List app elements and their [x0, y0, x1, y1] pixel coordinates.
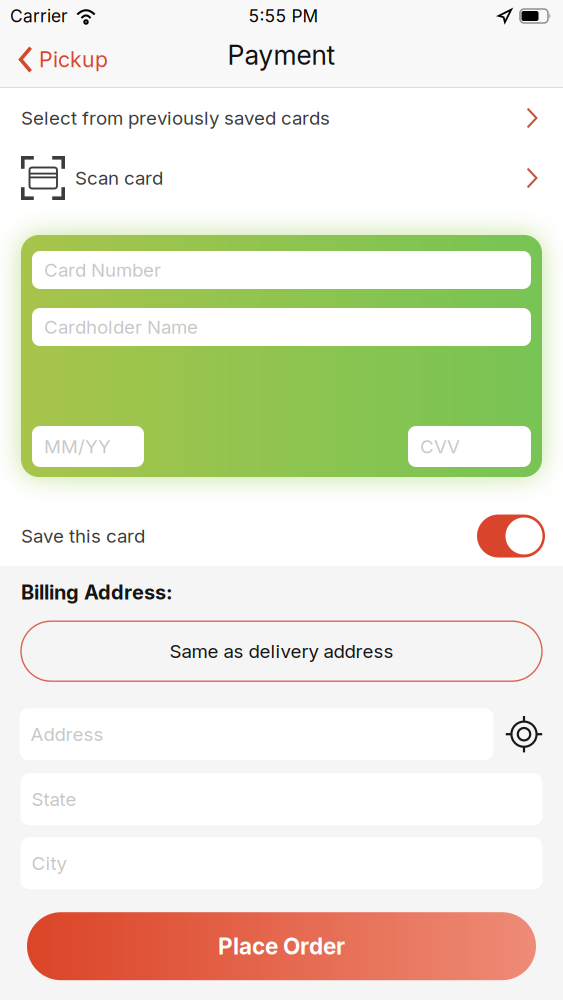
staticText: Scan card: [75, 167, 163, 189]
staticText: Select from previously saved cards: [21, 107, 330, 129]
staticText: MM/YY: [44, 435, 111, 458]
staticText: Cardholder Name: [44, 316, 198, 338]
staticText: City: [31, 852, 66, 874]
button[interactable]: Place Order: [27, 912, 536, 980]
staticText: Same as delivery address: [169, 640, 393, 662]
staticText: Payment: [227, 39, 335, 71]
staticText: Save this card: [21, 525, 145, 547]
staticText: CVV: [420, 435, 460, 458]
button[interactable]: Use current location: [493, 715, 543, 754]
button[interactable]: Save this card: [477, 514, 545, 557]
button[interactable]: Pickup: [0, 32, 118, 87]
button[interactable]: Select from previously saved cards: [0, 88, 563, 148]
staticText: Address: [30, 723, 103, 745]
staticText: 5:55 PM: [248, 5, 318, 26]
button[interactable]: Same as delivery address: [21, 621, 542, 681]
staticText: Billing Address:: [21, 580, 173, 604]
button[interactable]: Scan card: [0, 148, 563, 208]
staticText: Card Number: [44, 259, 161, 281]
staticText: Place Order: [218, 932, 345, 960]
staticText: State: [31, 788, 76, 810]
staticText: Pickup: [39, 47, 108, 72]
staticText: Carrier: [10, 5, 68, 26]
